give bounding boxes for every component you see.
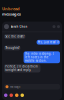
staticText: messages xyxy=(2,11,21,17)
staticText: Message xyxy=(10,85,21,88)
staticText: Yes, just read it xyxy=(38,40,59,44)
button[interactable]: Stickers xyxy=(15,93,18,97)
staticText: Perfect, I'll check them tonight and rep… xyxy=(5,65,37,72)
button[interactable]: Photos xyxy=(9,93,13,97)
button[interactable]: More xyxy=(20,93,24,97)
button[interactable]: Apps xyxy=(4,93,7,97)
staticText: The intro is strong. I left notes in the… xyxy=(25,52,54,63)
staticText: Thoughts? xyxy=(5,46,19,50)
staticText: Unbread xyxy=(2,6,20,11)
staticText: Sarah Chen xyxy=(10,25,27,28)
staticText: See the draft? xyxy=(5,35,24,38)
button[interactable]: Sarah Chen xyxy=(2,22,62,32)
button[interactable]: Message xyxy=(2,84,62,93)
